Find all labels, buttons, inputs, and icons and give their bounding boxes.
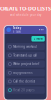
staticText: Call the dentist: [13, 80, 35, 83]
staticText: Team stand-up call: [13, 54, 37, 57]
staticText: 6 tasks: [13, 30, 21, 33]
staticText: + New: [34, 37, 43, 40]
staticText: Read 20 pages: [13, 88, 34, 92]
staticText: Write project brief: [13, 62, 39, 66]
button[interactable]: Team stand-up call: [6, 52, 45, 59]
button[interactable]: More options: [38, 28, 45, 31]
staticText: Buy groceries: [13, 71, 32, 74]
button[interactable]: Buy groceries: [6, 69, 45, 76]
staticText: CREATE TO-DO LISTS: [0, 5, 51, 12]
button[interactable]: + New: [31, 36, 45, 41]
button[interactable]: Call the dentist: [6, 78, 45, 85]
staticText: and schedule your day: [10, 13, 41, 17]
button[interactable]: Read 20 pages: [6, 86, 45, 94]
staticText: Morning workout: [13, 45, 37, 48]
button[interactable]: Write project brief: [6, 60, 45, 68]
staticText: Today: [13, 26, 21, 30]
button[interactable]: Morning workout: [6, 43, 45, 50]
